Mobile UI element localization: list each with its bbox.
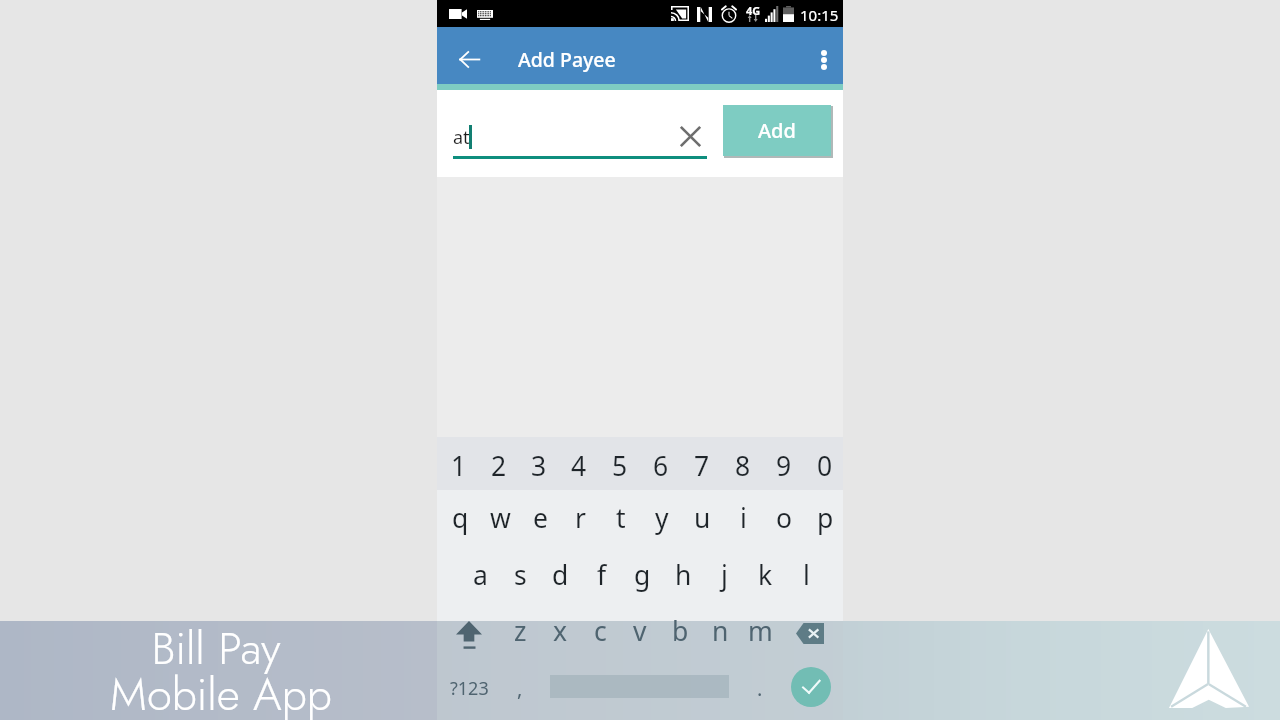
button[interactable]: z [500, 609, 540, 653]
button[interactable]: Backspace [780, 609, 843, 653]
button[interactable]: u [682, 490, 723, 548]
button[interactable]: Add [723, 105, 831, 156]
button[interactable]: a [460, 548, 500, 606]
staticText: i [740, 500, 747, 536]
staticText: v [633, 613, 647, 649]
staticText: 10:15 [800, 5, 839, 25]
button[interactable]: k [745, 548, 786, 606]
staticText: d [552, 557, 569, 593]
staticText: 7 [694, 448, 710, 484]
staticText: 4G [746, 3, 761, 18]
staticText: k [758, 557, 773, 593]
staticText: 9 [776, 448, 792, 484]
staticText: p [817, 500, 834, 536]
staticText: , [517, 675, 523, 702]
button[interactable]: h [663, 548, 704, 606]
button[interactable]: 2 [479, 437, 519, 490]
button[interactable]: y [641, 490, 682, 548]
button[interactable]: 5 [599, 437, 640, 490]
staticText: g [634, 557, 651, 593]
staticText: n [712, 613, 729, 649]
staticText: h [675, 557, 692, 593]
button[interactable]: Clear [672, 118, 708, 154]
button[interactable]: s [500, 548, 540, 606]
button[interactable]: p [805, 490, 846, 548]
button[interactable]: ?123 [443, 661, 496, 716]
staticText: m [748, 613, 773, 649]
button[interactable]: . [740, 661, 780, 716]
button[interactable]: r [560, 490, 600, 548]
button[interactable]: n [700, 609, 740, 653]
button[interactable]: e [520, 490, 560, 548]
staticText: 3 [531, 448, 547, 484]
staticText: Add [758, 117, 796, 144]
staticText: ?123 [450, 676, 489, 701]
button[interactable]: Shift [437, 609, 500, 653]
staticText: q [452, 500, 469, 536]
button[interactable]: b [660, 609, 700, 653]
staticText: f [597, 557, 607, 593]
button[interactable]: m [740, 609, 780, 653]
staticText: 4 [571, 448, 587, 484]
button[interactable]: j [704, 548, 745, 606]
button[interactable]: x [540, 609, 580, 653]
staticText: y [655, 500, 669, 536]
staticText: Add Payee [518, 46, 616, 73]
staticText: Mobile App [107, 662, 335, 720]
button[interactable]: 6 [640, 437, 681, 490]
staticText: w [490, 500, 511, 536]
button[interactable]: 4 [559, 437, 599, 490]
staticText: o [776, 500, 793, 536]
button[interactable]: d [540, 548, 581, 606]
button[interactable]: q [440, 490, 480, 548]
button[interactable]: i [723, 490, 764, 548]
button[interactable]: 3 [519, 437, 559, 490]
button[interactable]: c [580, 609, 620, 653]
staticText: 2 [491, 448, 507, 484]
staticText: e [533, 500, 548, 536]
staticText: Bill Pay [102, 616, 330, 681]
staticText: 1 [451, 448, 467, 484]
staticText: s [514, 557, 527, 593]
button[interactable]: 1 [439, 437, 479, 490]
button[interactable]: o [764, 490, 805, 548]
staticText: c [594, 613, 607, 649]
button[interactable]: 8 [722, 437, 763, 490]
staticText: 5 [612, 448, 628, 484]
button[interactable]: Done [779, 659, 842, 714]
staticText: at [453, 125, 470, 150]
staticText: t [616, 500, 626, 536]
staticText: 0 [817, 448, 833, 484]
staticText: 8 [735, 448, 751, 484]
button[interactable]: v [620, 609, 660, 653]
button[interactable]: Space [550, 659, 729, 714]
staticText: . [757, 675, 763, 702]
button[interactable]: More options [795, 31, 843, 88]
button[interactable]: t [600, 490, 641, 548]
staticText: r [575, 500, 586, 536]
button[interactable]: l [786, 548, 827, 606]
button[interactable]: 7 [681, 437, 722, 490]
staticText: l [803, 557, 810, 593]
button[interactable]: w [480, 490, 520, 548]
staticText: u [694, 500, 711, 536]
staticText: z [514, 613, 527, 649]
staticText: 6 [653, 448, 669, 484]
button[interactable]: g [622, 548, 663, 606]
button[interactable]: f [581, 548, 622, 606]
button[interactable]: , [500, 661, 540, 716]
button[interactable]: Back [437, 31, 501, 88]
staticText: a [473, 557, 488, 593]
button[interactable]: 9 [763, 437, 804, 490]
staticText: x [553, 613, 568, 649]
staticText: b [672, 613, 689, 649]
button[interactable]: 0 [804, 437, 845, 490]
staticText: j [721, 557, 728, 593]
